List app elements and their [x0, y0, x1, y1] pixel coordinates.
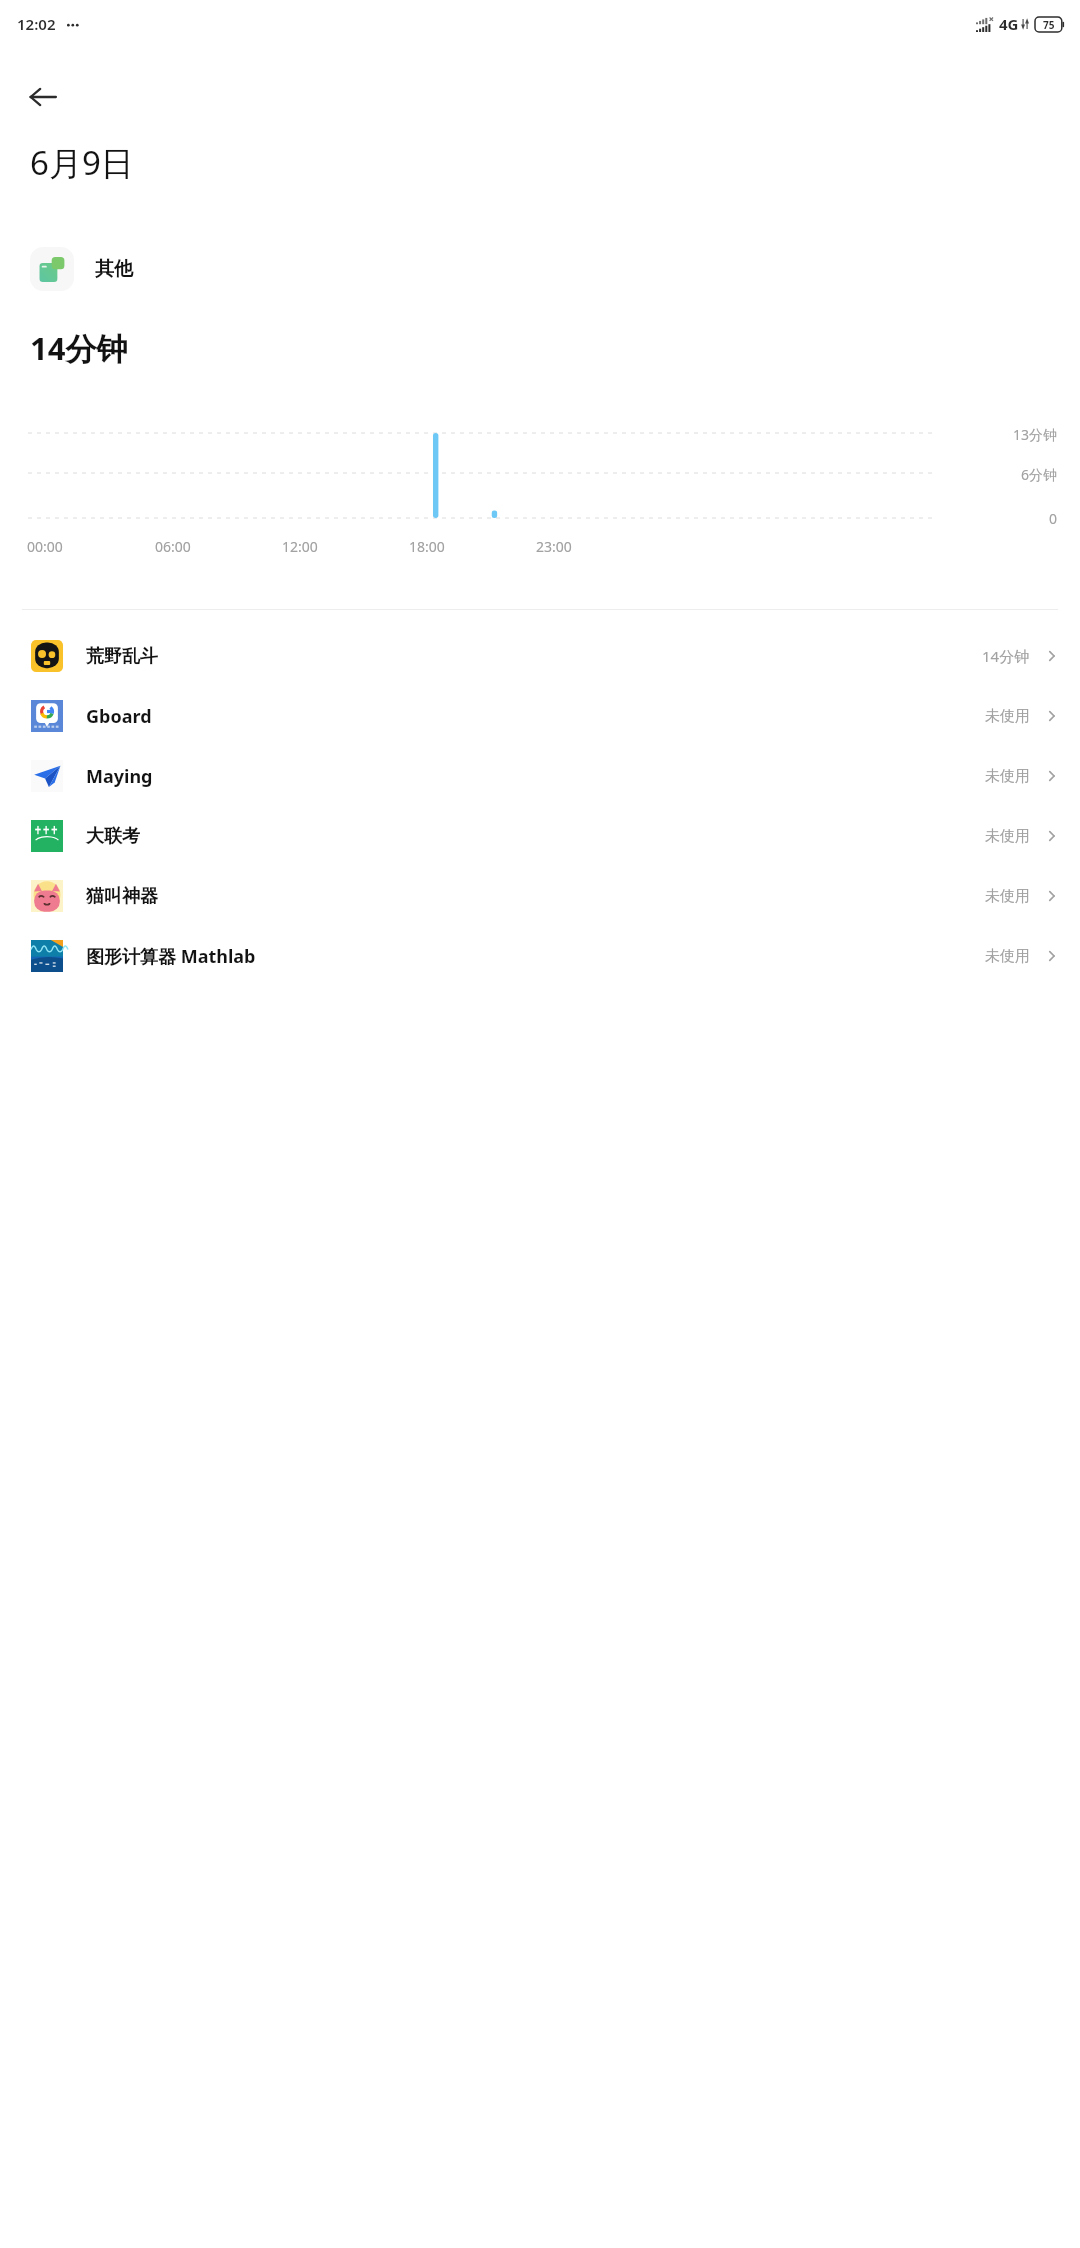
staticText: 未使用 [985, 827, 1030, 846]
staticText: Maying [86, 764, 153, 789]
button[interactable]: 其他 [30, 247, 133, 291]
button[interactable]: Maying [0, 746, 1080, 806]
button[interactable]: 荒野乱斗 [0, 626, 1080, 686]
staticText: 18:00 [409, 537, 536, 556]
staticText: 6分钟 [1021, 465, 1058, 484]
button[interactable]: 大联考 [0, 806, 1080, 866]
staticText: 12:02 [17, 14, 56, 34]
staticText: 未使用 [985, 947, 1030, 966]
staticText: 未使用 [985, 707, 1030, 726]
staticText: 75 [1043, 18, 1055, 32]
staticText: 23:00 [536, 537, 663, 556]
staticText: 图形计算器 Mathlab [86, 944, 256, 969]
button[interactable]: 图形计算器 Mathlab [0, 926, 1080, 986]
button[interactable]: Back [14, 68, 72, 126]
staticText: 未使用 [985, 887, 1030, 906]
staticText: 13分钟 [1013, 425, 1058, 444]
staticText: 未使用 [985, 767, 1030, 786]
staticText: 0 [1049, 509, 1058, 528]
button[interactable]: 猫叫神器 [0, 866, 1080, 926]
staticText: 12:00 [282, 537, 409, 556]
staticText: Gboard [86, 704, 152, 729]
staticText: 猫叫神器 [86, 885, 158, 908]
button[interactable]: Gboard [0, 686, 1080, 746]
staticText: 荒野乱斗 [86, 645, 158, 668]
staticText: 00:00 [27, 537, 155, 556]
staticText: 06:00 [155, 537, 282, 556]
staticText: 4G [999, 14, 1019, 34]
staticText: 14分钟 [30, 327, 128, 369]
staticText: 6月9日 [30, 140, 134, 185]
staticText: 大联考 [86, 825, 140, 848]
staticText: 14分钟 [982, 646, 1030, 666]
staticText: 其他 [95, 257, 133, 281]
